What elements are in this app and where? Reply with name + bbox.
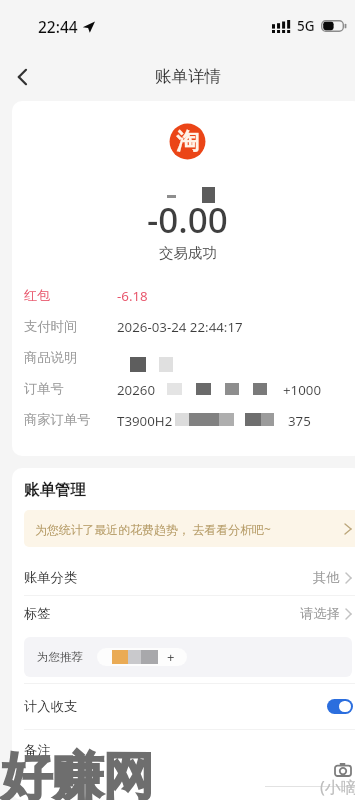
staticText: 为您推荐 [37,650,83,664]
staticText: +1000 [283,381,322,399]
button[interactable]: 账单分类 [12,560,355,595]
staticText: 5G [297,17,315,35]
staticText: 商家订单号 [24,411,91,428]
staticText: 账单详情 [155,66,221,87]
button[interactable]: 为您推荐 [24,637,352,677]
staticText: -6.18 [117,287,148,305]
button[interactable]: 计入收支 [12,684,355,729]
button[interactable]: Include in income and expenses [327,699,353,714]
staticText: 淘 [176,127,199,156]
staticText: -0.00 [147,196,228,244]
staticText: 为您统计了最近的花费趋势， 去看看分析吧~ [35,521,271,537]
staticText: + [167,648,175,666]
staticText: 好赚网 [1,745,154,800]
staticText: 20260 [117,381,156,399]
button[interactable]: 备注 [12,730,355,770]
staticText: (小嘀 [320,776,355,798]
staticText: 请选择 [300,605,340,622]
staticText: 计入收支 [24,698,78,715]
staticText: 账单分类 [24,569,78,586]
staticText: 支付时间 [24,318,78,335]
button[interactable]: 为您统计了最近的花费趋势， 去看看分析吧~ [24,510,355,547]
staticText: 交易成功 [159,244,217,262]
staticText: 红包 [24,287,51,304]
staticText: T3900H2 [117,412,173,430]
staticText: 22:44 [38,16,78,37]
staticText: 2026-03-24 22:44:17 [117,318,243,336]
staticText: 账单管理 [24,480,86,499]
staticText: 订单号 [24,380,64,397]
staticText: 商品说明 [24,349,78,366]
staticText: 标签 [24,605,51,622]
staticText: 备注 [24,742,51,759]
button[interactable]: 标签 [12,596,355,631]
staticText: 375 [288,412,311,430]
staticText: 其他 [313,569,340,586]
button[interactable]: Back [0,52,44,101]
